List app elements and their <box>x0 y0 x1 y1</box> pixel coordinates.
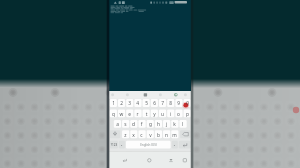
button[interactable]: 5 <box>143 100 150 106</box>
staticText: i <box>167 111 174 117</box>
button[interactable]: m <box>171 132 178 138</box>
button[interactable]: i <box>167 111 174 117</box>
button[interactable]: t <box>143 111 150 117</box>
staticText: b <box>155 132 162 138</box>
button[interactable]: Settings <box>182 91 189 99</box>
button[interactable]: q <box>110 111 117 117</box>
button[interactable]: g <box>147 121 154 127</box>
staticText: e <box>126 111 133 117</box>
staticText: q <box>110 111 117 117</box>
button[interactable]: Enter <box>179 141 191 149</box>
button[interactable]: y <box>151 111 158 117</box>
button[interactable]: 0 <box>184 100 191 106</box>
staticText: n <box>163 132 170 138</box>
button[interactable]: Emoji <box>157 91 164 99</box>
button[interactable]: 6 <box>151 100 158 106</box>
staticText: 5 <box>143 100 150 106</box>
button[interactable]: 1 <box>110 100 117 106</box>
staticText: English (US) <box>126 143 171 147</box>
button[interactable]: u <box>159 111 166 117</box>
staticText: a <box>114 121 121 127</box>
button[interactable]: p <box>184 111 191 117</box>
button[interactable]: c <box>138 132 145 138</box>
button[interactable]: 2 <box>118 100 125 106</box>
staticText: m <box>171 132 178 138</box>
staticText: r <box>134 111 141 117</box>
staticText: f <box>138 121 145 127</box>
staticText: 0 <box>184 100 191 106</box>
staticText: c <box>138 132 145 138</box>
button[interactable]: j <box>163 121 170 127</box>
staticText: j <box>163 121 170 127</box>
staticText: 8 <box>167 100 174 106</box>
button[interactable]: 7 <box>159 100 166 106</box>
button[interactable]: Translate <box>172 91 179 99</box>
staticText: v <box>147 132 154 138</box>
staticText: l <box>179 121 186 127</box>
staticText: z <box>122 132 129 138</box>
button[interactable]: Stickers <box>124 91 131 99</box>
button[interactable]: Back <box>121 155 129 166</box>
button[interactable]: s <box>122 121 129 127</box>
staticText: 4 <box>134 100 141 106</box>
button[interactable]: a <box>114 121 121 127</box>
staticText: k <box>171 121 178 127</box>
staticText: d <box>130 121 137 127</box>
button[interactable]: Period <box>172 141 178 149</box>
button[interactable]: r <box>134 111 141 117</box>
button[interactable]: v <box>147 132 154 138</box>
staticText: 2 <box>118 100 125 106</box>
button[interactable]: Search <box>109 91 116 99</box>
button[interactable]: 8 <box>167 100 174 106</box>
staticText: u <box>159 111 166 117</box>
button[interactable]: Comma <box>119 141 125 149</box>
button[interactable]: Clipboard <box>142 91 149 99</box>
button[interactable]: ?123 <box>110 143 118 147</box>
button[interactable]: Shift <box>110 130 121 138</box>
button[interactable]: Recents <box>181 155 189 166</box>
staticText: 7 <box>159 100 166 106</box>
button[interactable]: k <box>171 121 178 127</box>
staticText: p <box>184 111 191 117</box>
button[interactable]: e <box>126 111 133 117</box>
button[interactable]: d <box>130 121 137 127</box>
button[interactable]: 4 <box>134 100 141 106</box>
button[interactable]: w <box>118 111 125 117</box>
button[interactable]: l <box>179 121 186 127</box>
staticText: y <box>151 111 158 117</box>
button[interactable]: x <box>130 132 137 138</box>
button[interactable]: o <box>175 111 182 117</box>
staticText: h <box>155 121 162 127</box>
button[interactable]: Hide keyboard <box>167 155 175 166</box>
staticText: 6 <box>151 100 158 106</box>
button[interactable]: f <box>138 121 145 127</box>
staticText: 3 <box>126 100 133 106</box>
button[interactable]: Home <box>146 155 154 166</box>
button[interactable]: Backspace <box>180 130 191 138</box>
button[interactable]: h <box>155 121 162 127</box>
staticText: 9 <box>175 100 182 106</box>
staticText: 1 <box>110 100 117 106</box>
staticText: s <box>122 121 129 127</box>
staticText: o <box>175 111 182 117</box>
button[interactable]: 3 <box>126 100 133 106</box>
staticText: w <box>118 111 125 117</box>
staticText: ?123 <box>110 143 118 147</box>
button[interactable]: 9 <box>175 100 182 106</box>
button[interactable]: English (US) <box>126 143 171 147</box>
staticText: g <box>147 121 154 127</box>
button[interactable]: n <box>163 132 170 138</box>
staticText: x <box>130 132 137 138</box>
staticText: t <box>143 111 150 117</box>
button[interactable]: z <box>122 132 129 138</box>
button[interactable]: b <box>155 132 162 138</box>
